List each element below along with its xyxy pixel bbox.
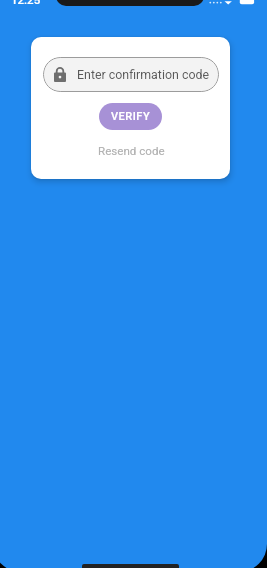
staticText: Enter confirmation code (77, 67, 210, 82)
staticText: Resend code (98, 144, 165, 158)
button[interactable]: Enter confirmation code (43, 57, 219, 92)
staticText: VERIFY (111, 110, 151, 123)
button[interactable]: VERIFY (99, 103, 162, 130)
staticText: 12:25 (11, 0, 41, 6)
button[interactable]: Resend code (86, 139, 176, 163)
